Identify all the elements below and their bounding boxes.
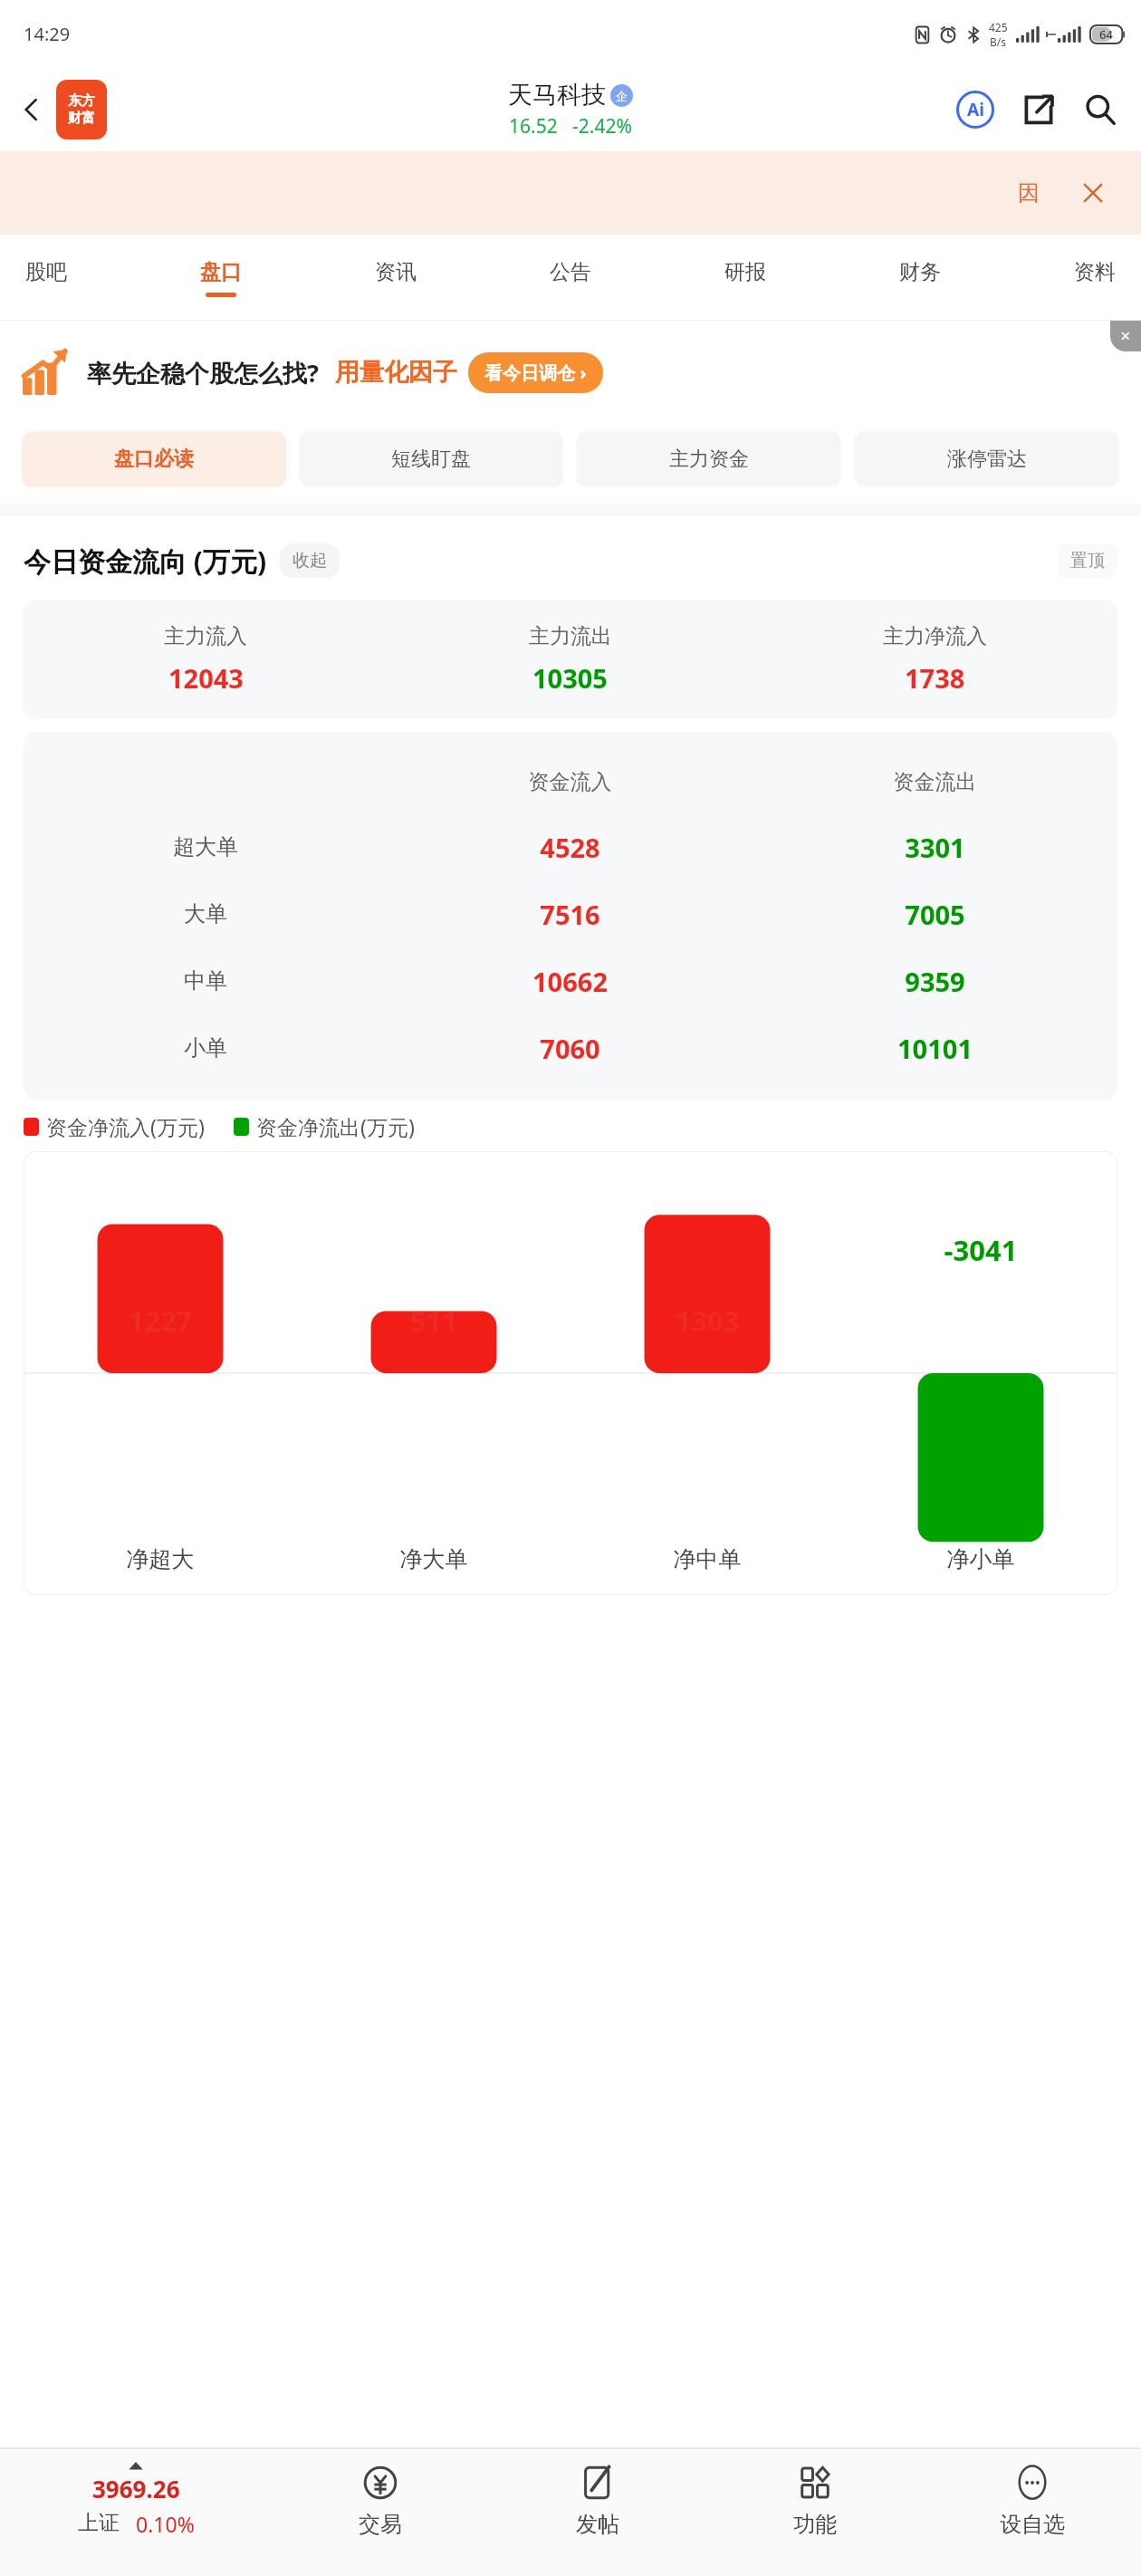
staticText: 资金流入 bbox=[388, 769, 753, 795]
staticText: 中单 bbox=[24, 967, 388, 995]
button[interactable]: Close notice bbox=[1070, 170, 1116, 216]
staticText: 用量化因子 bbox=[335, 357, 457, 388]
staticText: 研报 bbox=[724, 259, 766, 285]
staticText: 率先企稳个股怎么找? bbox=[87, 356, 319, 389]
button[interactable]: AI assistant bbox=[949, 83, 1002, 136]
staticText: 16.52 bbox=[509, 113, 558, 139]
staticText: ✕ bbox=[1120, 329, 1131, 343]
button[interactable]: 发帖 bbox=[489, 2449, 706, 2576]
button[interactable]: Share bbox=[1012, 83, 1065, 136]
staticText: -2.42% bbox=[572, 113, 632, 139]
staticText: 净小单 bbox=[844, 1545, 1117, 1573]
staticText: 涨停雷达 bbox=[947, 447, 1027, 472]
staticText: 4528 bbox=[388, 830, 753, 865]
button[interactable]: 资讯 bbox=[366, 254, 426, 303]
staticText: 资金净流入(万元) bbox=[46, 1112, 205, 1140]
staticText: 小单 bbox=[24, 1034, 388, 1062]
staticText: 盘口必读 bbox=[114, 447, 194, 472]
staticText: 公告 bbox=[550, 259, 591, 285]
staticText: 10305 bbox=[532, 660, 608, 696]
staticText: 收起 bbox=[292, 550, 327, 572]
staticText: 9359 bbox=[753, 964, 1117, 999]
staticText: 东方 bbox=[68, 92, 95, 110]
staticText: 主力资金 bbox=[669, 447, 749, 472]
staticText: 7516 bbox=[388, 897, 753, 932]
staticText: 1227 bbox=[24, 1302, 297, 1340]
staticText: 主力流入 bbox=[164, 623, 247, 649]
staticText: 净中单 bbox=[570, 1545, 844, 1573]
staticText: 盘口 bbox=[200, 259, 242, 285]
staticText: 发帖 bbox=[576, 2511, 619, 2538]
staticText: 64 bbox=[1099, 26, 1113, 43]
staticText: 资金流出 bbox=[753, 769, 1117, 795]
staticText: 功能 bbox=[793, 2511, 837, 2538]
staticText: 资讯 bbox=[375, 259, 417, 285]
staticText: 7005 bbox=[753, 897, 1117, 932]
staticText: 看今日调仓 › bbox=[484, 360, 587, 385]
staticText bbox=[570, 1231, 844, 1269]
button[interactable]: 涨停雷达 bbox=[854, 431, 1119, 487]
button[interactable]: 功能 bbox=[706, 2449, 924, 2576]
button[interactable]: 置顶 bbox=[1058, 543, 1117, 578]
button[interactable]: 主力流入 bbox=[24, 600, 1117, 719]
button[interactable]: Back bbox=[7, 85, 56, 134]
button[interactable]: 资料 bbox=[1065, 254, 1125, 303]
staticText: 股吧 bbox=[25, 259, 67, 285]
staticText: 3969.26 bbox=[92, 2473, 180, 2504]
staticText: 资金净流出(万元) bbox=[256, 1112, 415, 1140]
staticText: 设自选 bbox=[1000, 2511, 1065, 2538]
staticText: 因 bbox=[1018, 179, 1040, 207]
button[interactable]: 公告 bbox=[541, 254, 600, 303]
staticText: 511 bbox=[297, 1302, 570, 1340]
button[interactable]: 财务 bbox=[890, 254, 950, 303]
staticText: 上证 bbox=[78, 2510, 120, 2536]
button[interactable]: Search bbox=[1074, 83, 1127, 136]
staticText: 7060 bbox=[388, 1031, 753, 1066]
staticText: 天马科技 bbox=[508, 80, 606, 111]
staticText: 财务 bbox=[899, 259, 941, 285]
button[interactable]: 短线盯盘 bbox=[299, 431, 563, 487]
staticText: 主力流出 bbox=[529, 623, 612, 649]
staticText: 14:29 bbox=[24, 22, 71, 46]
button[interactable]: 主力资金 bbox=[576, 431, 841, 487]
staticText: 短线盯盘 bbox=[391, 447, 471, 472]
button[interactable]: 收起 bbox=[280, 543, 340, 578]
staticText: 1738 bbox=[905, 660, 965, 696]
staticText: 10662 bbox=[388, 964, 753, 999]
staticText: 10101 bbox=[753, 1031, 1117, 1066]
button[interactable]: 研报 bbox=[715, 254, 775, 303]
button[interactable]: 盘口必读 bbox=[22, 431, 286, 487]
staticText: 净大单 bbox=[297, 1545, 570, 1573]
staticText: 3301 bbox=[753, 830, 1117, 865]
staticText: Ai bbox=[967, 98, 984, 121]
staticText: 大单 bbox=[24, 900, 388, 928]
button[interactable]: 资金流入 bbox=[24, 732, 1117, 1100]
button[interactable]: 股吧 bbox=[16, 254, 76, 303]
button[interactable]: 东方财富 bbox=[56, 80, 107, 139]
staticText: B/s bbox=[990, 34, 1007, 49]
button[interactable]: 交易 bbox=[272, 2449, 489, 2576]
staticText: 财富 bbox=[68, 110, 95, 127]
button[interactable]: 1227 bbox=[24, 1151, 1117, 1595]
staticText: 超大单 bbox=[24, 833, 388, 860]
staticText: 425 bbox=[989, 20, 1008, 34]
staticText: 净超大 bbox=[24, 1545, 297, 1573]
staticText: 今日资金流向 (万元) bbox=[24, 543, 267, 580]
staticText: 0.10% bbox=[136, 2510, 195, 2538]
staticText: 企 bbox=[616, 89, 628, 103]
staticText bbox=[24, 1231, 297, 1269]
staticText: -3041 bbox=[844, 1231, 1117, 1269]
button[interactable]: 3969.26 bbox=[0, 2449, 272, 2576]
staticText: 主力净流入 bbox=[883, 623, 987, 649]
staticText: 资料 bbox=[1074, 259, 1116, 285]
staticText: 置顶 bbox=[1070, 550, 1105, 572]
staticText: 1303 bbox=[570, 1302, 844, 1340]
button[interactable]: 看今日调仓 › bbox=[468, 352, 603, 393]
staticText: 12043 bbox=[168, 660, 244, 696]
staticText: 交易 bbox=[359, 2511, 402, 2538]
button[interactable]: 盘口 bbox=[191, 254, 251, 303]
button[interactable]: Close ad bbox=[1110, 321, 1141, 351]
button[interactable]: 设自选 bbox=[924, 2449, 1141, 2576]
